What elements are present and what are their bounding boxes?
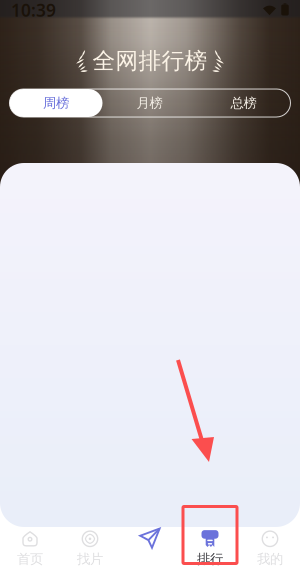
staticText: 全网排行榜: [92, 47, 207, 75]
staticText: 月榜: [136, 95, 162, 111]
staticText: 10:39: [11, 0, 56, 21]
button[interactable]: 月榜: [102, 89, 196, 117]
staticText: 周榜: [43, 95, 69, 111]
staticText: 首页: [17, 551, 43, 567]
button[interactable]: 总榜: [196, 89, 290, 117]
staticText: 排行: [197, 551, 223, 567]
button[interactable]: 找片: [60, 527, 120, 570]
staticText: 我的: [257, 551, 283, 567]
staticText: 总榜: [230, 95, 256, 111]
button[interactable]: Send: [120, 527, 180, 570]
button[interactable]: 周榜: [9, 89, 102, 117]
button[interactable]: 我的: [240, 527, 300, 570]
staticText: 找片: [77, 551, 103, 567]
button[interactable]: 首页: [0, 527, 60, 570]
button[interactable]: 排行: [180, 527, 240, 570]
